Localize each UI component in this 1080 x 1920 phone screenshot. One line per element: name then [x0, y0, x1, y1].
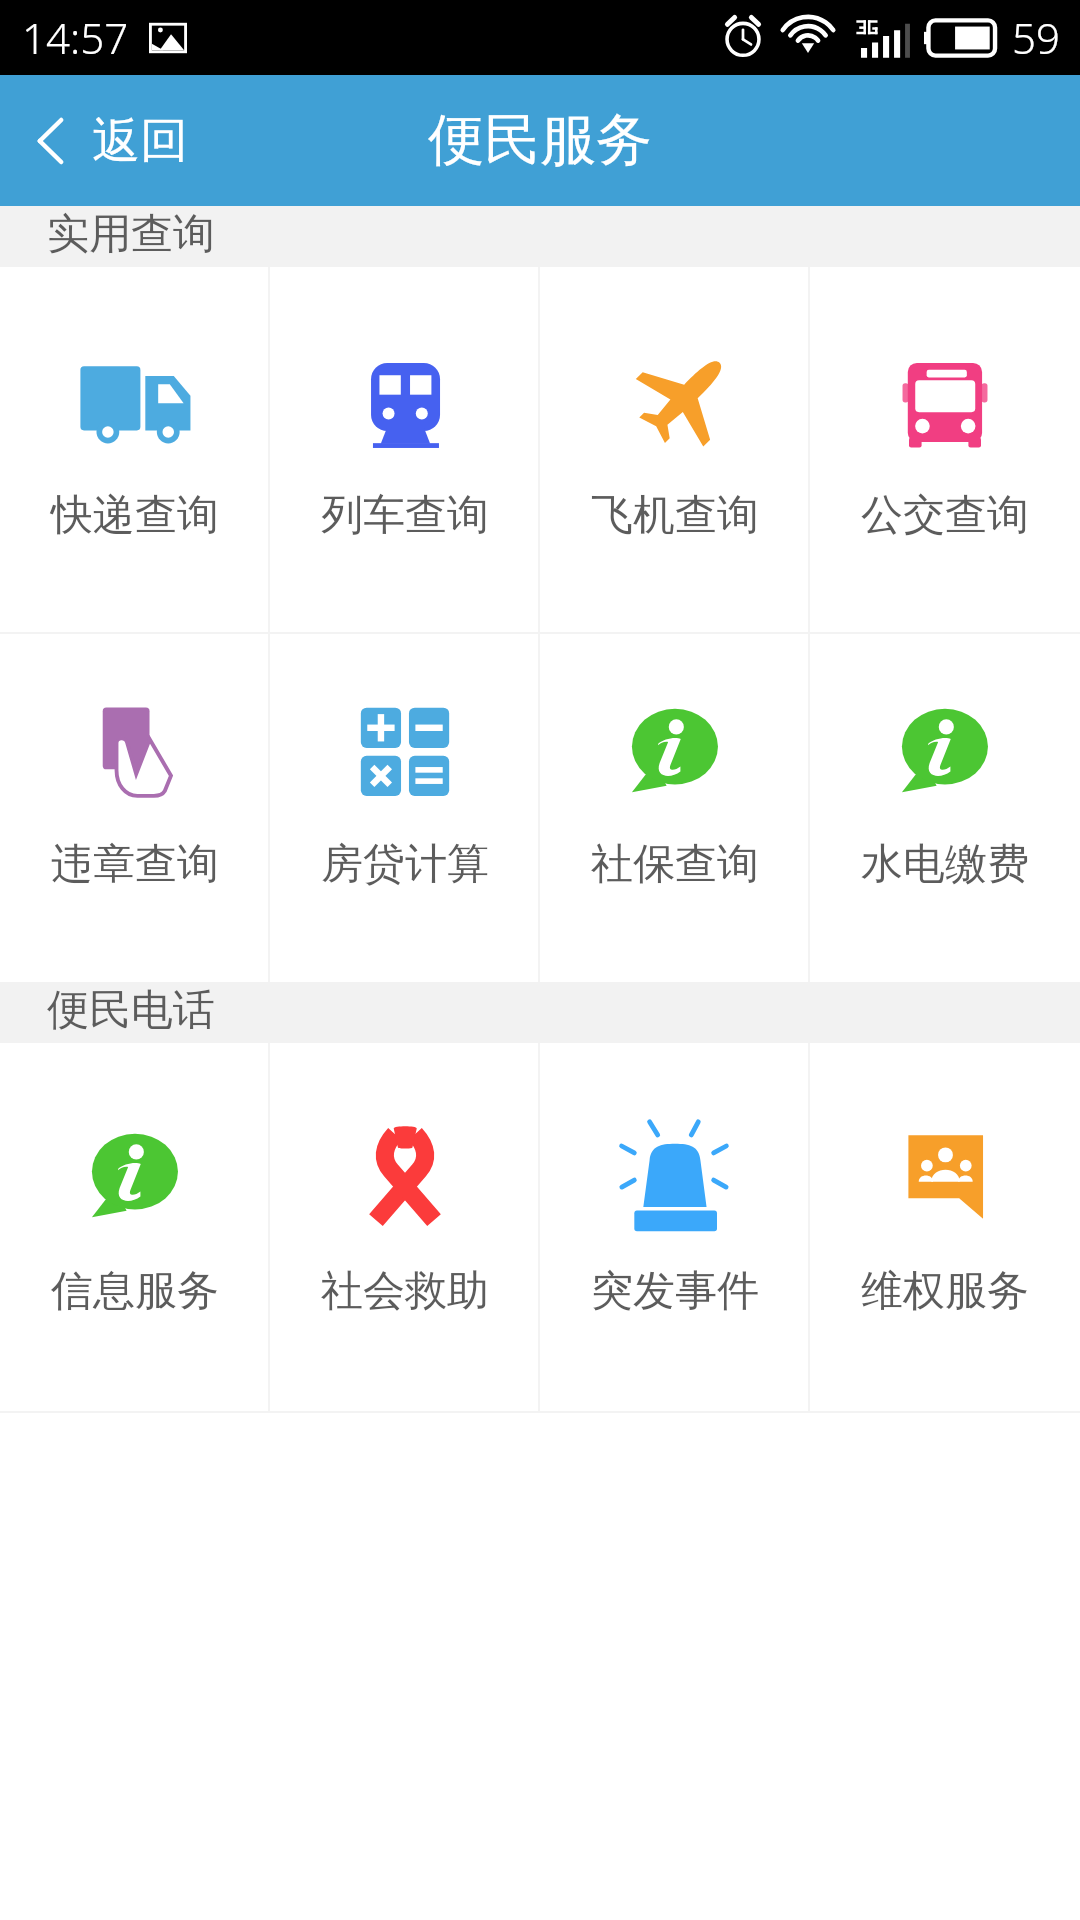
staticText: 水电缴费	[861, 838, 1029, 891]
staticText: 返回	[92, 111, 188, 171]
button[interactable]: 飞机查询	[540, 267, 810, 632]
staticText: 便民服务	[428, 105, 652, 176]
button[interactable]: 违章查询	[0, 632, 270, 982]
staticText: 信息服务	[51, 1265, 219, 1318]
staticText: 公交查询	[861, 489, 1029, 542]
button[interactable]: 列车查询	[270, 267, 540, 632]
button[interactable]: 社保查询	[540, 632, 810, 982]
button[interactable]: 维权服务	[810, 1043, 1080, 1411]
staticText: 飞机查询	[591, 489, 759, 542]
staticText: 违章查询	[51, 838, 219, 891]
button[interactable]: 公交查询	[810, 267, 1080, 632]
staticText: 便民电话	[47, 984, 215, 1037]
staticText: 列车查询	[321, 489, 489, 542]
button[interactable]: 水电缴费	[810, 632, 1080, 982]
staticText: 实用查询	[47, 208, 215, 261]
staticText: 快递查询	[51, 489, 219, 542]
staticText: 房贷计算	[321, 838, 489, 891]
staticText: 突发事件	[591, 1265, 759, 1318]
button[interactable]: 社会救助	[270, 1043, 540, 1411]
button[interactable]: 房贷计算	[270, 632, 540, 982]
button[interactable]: 信息服务	[0, 1043, 270, 1411]
button[interactable]: 突发事件	[540, 1043, 810, 1411]
staticText: 维权服务	[861, 1265, 1029, 1318]
button[interactable]: 返回	[0, 75, 1080, 206]
staticText: 社保查询	[591, 838, 759, 891]
staticText: 14:57	[22, 9, 129, 66]
staticText: 社会救助	[321, 1265, 489, 1318]
staticText: 59	[1012, 9, 1060, 66]
button[interactable]: 快递查询	[0, 267, 270, 632]
